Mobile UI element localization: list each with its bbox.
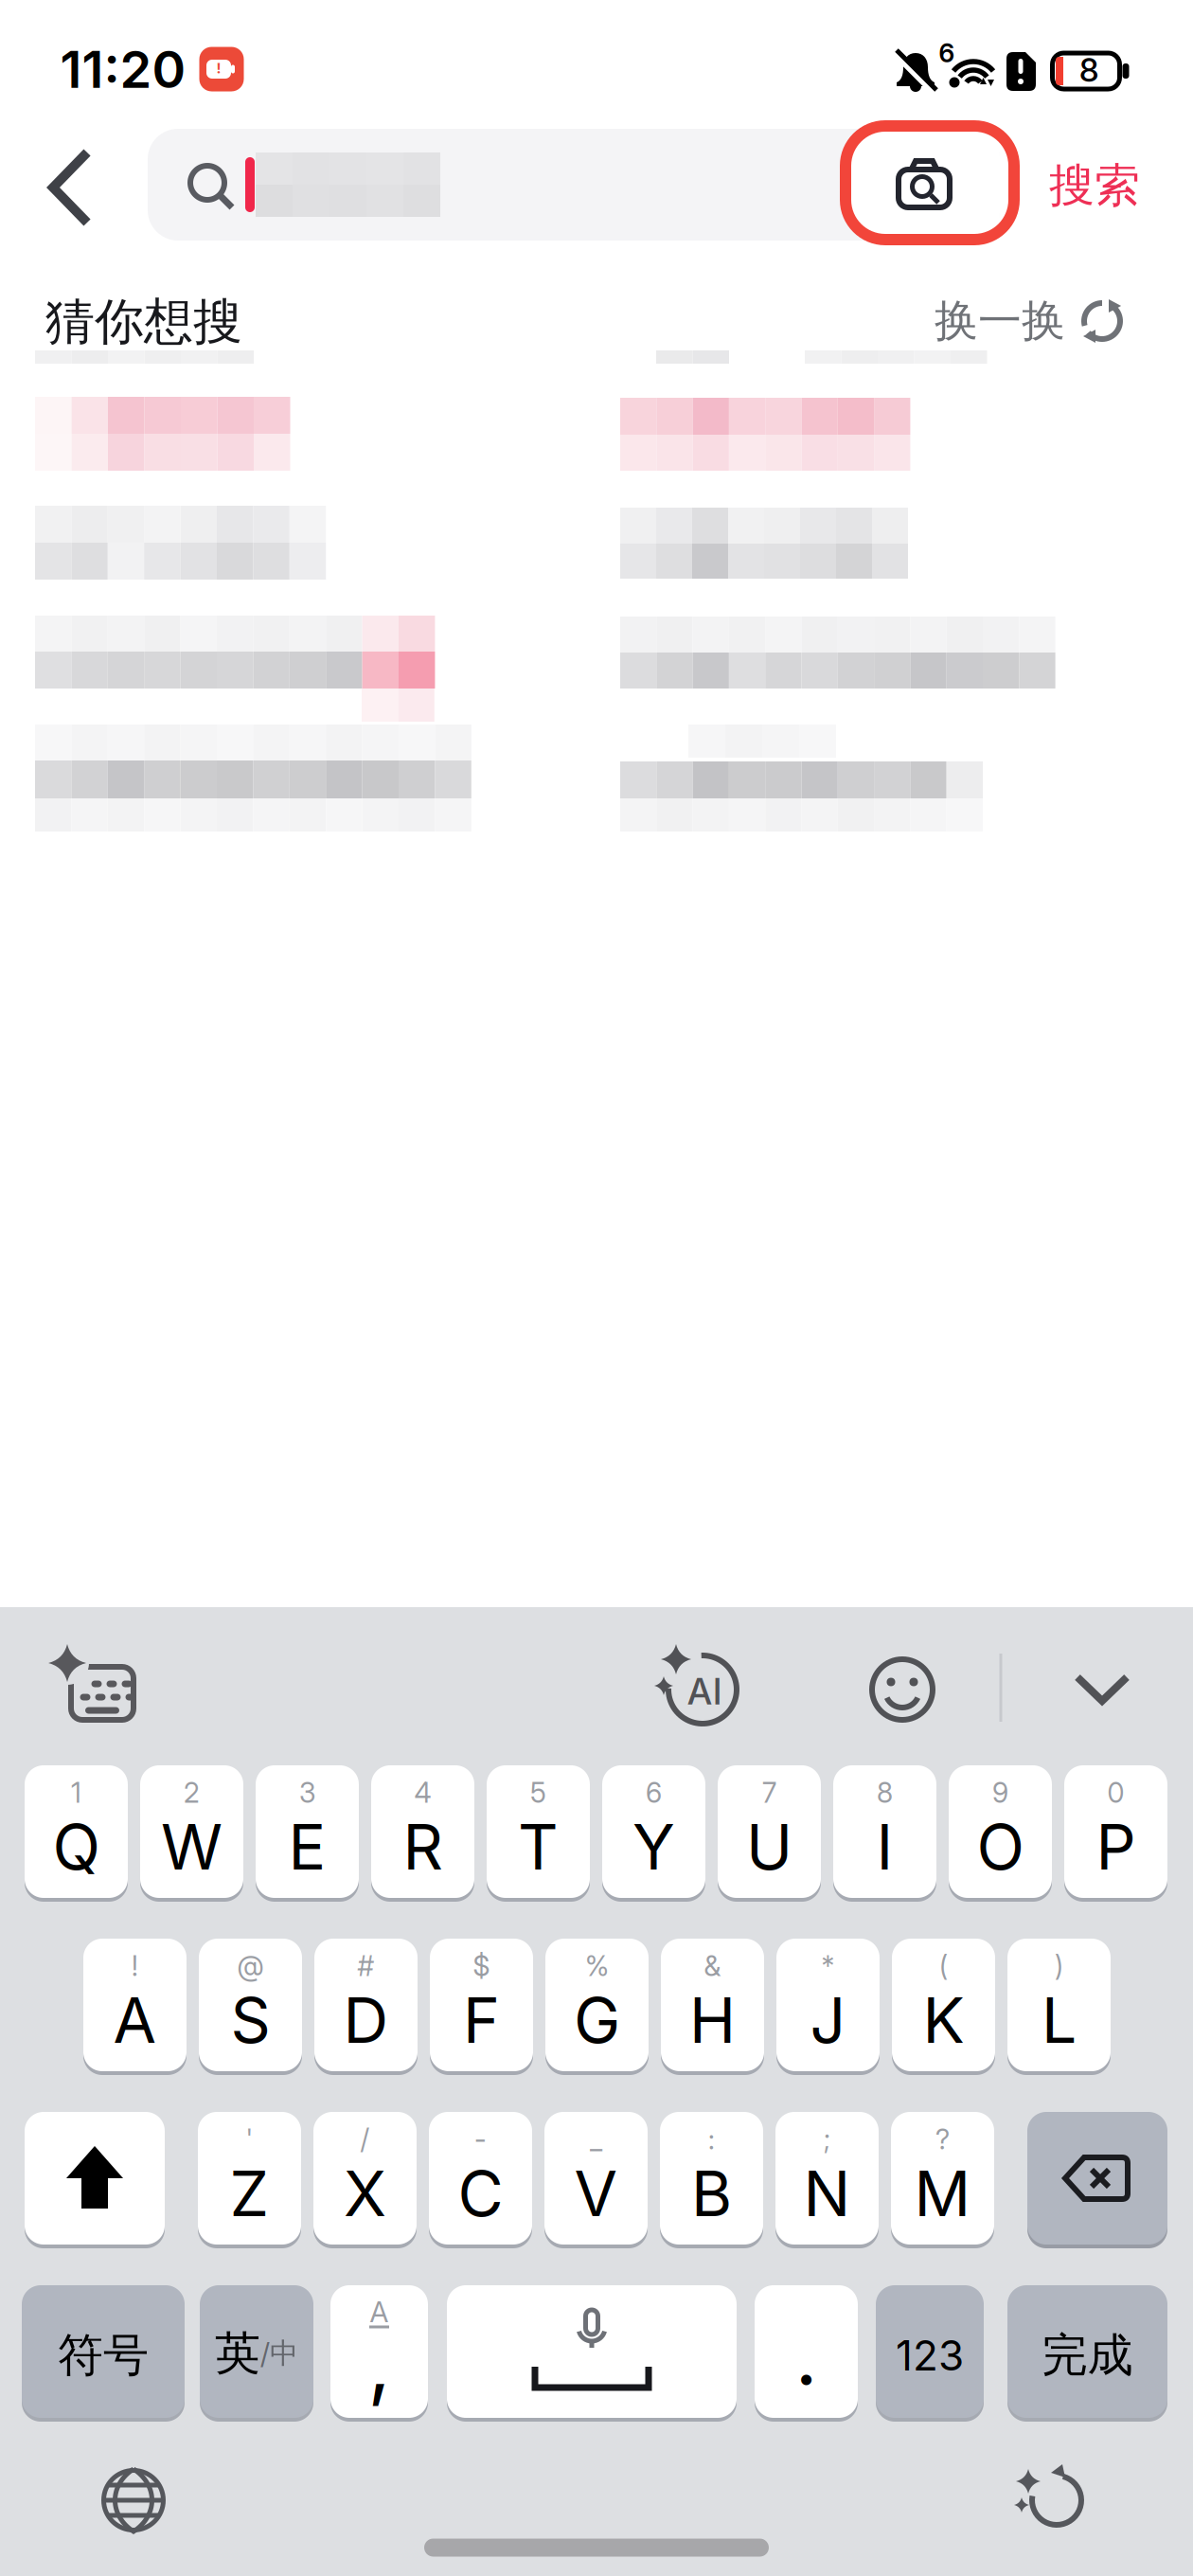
staticText: 7 xyxy=(762,1777,776,1809)
staticText: 6 xyxy=(646,1777,662,1809)
button[interactable]: I xyxy=(833,1765,936,1898)
staticText: S xyxy=(231,1983,270,2057)
button[interactable]: R xyxy=(371,1765,474,1898)
staticText: A xyxy=(370,2295,389,2329)
button[interactable]: Space xyxy=(447,2285,737,2418)
staticText: V xyxy=(574,2157,618,2230)
staticText: $ xyxy=(473,1950,490,1982)
button[interactable]: N xyxy=(775,2112,879,2245)
button[interactable]: K xyxy=(892,1939,995,2071)
staticText: C xyxy=(458,2157,503,2230)
button[interactable]: W xyxy=(140,1765,243,1898)
staticText: D xyxy=(343,1983,389,2057)
button[interactable]: Switch keyboard xyxy=(47,1648,142,1727)
staticText: H xyxy=(689,1983,736,2057)
button[interactable]: Shift xyxy=(25,2112,165,2245)
staticText: ) xyxy=(1055,1950,1063,1982)
staticText: 6 xyxy=(939,38,955,68)
staticText: 3 xyxy=(299,1777,315,1809)
staticText: & xyxy=(704,1950,721,1982)
button[interactable]: Emoji xyxy=(868,1655,936,1724)
staticText: 完成 xyxy=(1042,2327,1133,2383)
button[interactable]: T xyxy=(487,1765,590,1898)
button[interactable]: L xyxy=(1007,1939,1111,2071)
staticText: Q xyxy=(53,1810,100,1884)
staticText: 符号 xyxy=(58,2327,149,2383)
button[interactable]: 换一换 xyxy=(935,294,1124,348)
staticText: R xyxy=(403,1810,443,1884)
staticText: / xyxy=(360,2123,370,2156)
button[interactable]: M xyxy=(891,2112,994,2245)
staticText: 1 xyxy=(71,1777,81,1809)
staticText: U xyxy=(746,1810,792,1884)
button[interactable]: X xyxy=(313,2112,417,2245)
staticText: T xyxy=(518,1810,559,1884)
button[interactable]: 完成 xyxy=(1007,2285,1167,2418)
staticText: @ xyxy=(237,1950,264,1982)
button[interactable]: F xyxy=(430,1939,533,2071)
staticText: ? xyxy=(935,2123,950,2156)
button[interactable]: Back xyxy=(32,140,108,235)
button[interactable]: Y xyxy=(602,1765,705,1898)
button[interactable]: Restore xyxy=(1015,2460,1091,2536)
staticText: X xyxy=(344,2157,386,2230)
staticText: 换一换 xyxy=(935,294,1065,348)
button[interactable]: 符号 xyxy=(22,2285,185,2418)
staticText: M xyxy=(914,2157,971,2230)
staticText: J xyxy=(810,1983,846,2057)
button[interactable]: J xyxy=(776,1939,880,2071)
staticText: ; xyxy=(824,2123,830,2156)
button[interactable]: Z xyxy=(198,2112,301,2245)
button[interactable]: period xyxy=(755,2285,858,2418)
button[interactable]: U xyxy=(718,1765,821,1898)
staticText: I xyxy=(876,1810,893,1884)
staticText: G xyxy=(574,1983,620,2057)
staticText: O xyxy=(977,1810,1024,1884)
staticText: 0 xyxy=(1107,1777,1124,1809)
staticText: , xyxy=(368,2316,391,2410)
button[interactable]: Dismiss keyboard xyxy=(1074,1673,1131,1706)
button[interactable]: Image search xyxy=(848,129,1000,241)
button[interactable]: D xyxy=(314,1939,418,2071)
staticText: B xyxy=(691,2157,732,2230)
button[interactable]: C xyxy=(429,2112,532,2245)
staticText: L xyxy=(1042,1983,1077,2057)
button[interactable]: Delete xyxy=(1027,2112,1167,2245)
button[interactable]: V xyxy=(544,2112,648,2245)
staticText: K xyxy=(923,1983,964,2057)
button[interactable]: A xyxy=(83,1939,187,2071)
staticText: _ xyxy=(590,2123,602,2156)
button[interactable]: P xyxy=(1064,1765,1167,1898)
staticText: Y xyxy=(632,1810,675,1884)
staticText: 5 xyxy=(530,1777,546,1809)
staticText: * xyxy=(821,1950,835,1982)
staticText: - xyxy=(474,2123,487,2156)
staticText: F xyxy=(463,1983,500,2057)
staticText: N xyxy=(803,2157,851,2230)
button[interactable]: H xyxy=(661,1939,764,2071)
staticText: 11:20 xyxy=(60,39,186,99)
button[interactable]: O xyxy=(949,1765,1052,1898)
button[interactable]: Q xyxy=(25,1765,128,1898)
button[interactable]: 搜索 xyxy=(1049,158,1140,214)
button[interactable]: 123 xyxy=(876,2285,984,2418)
staticText: /中 xyxy=(260,2336,298,2371)
button[interactable]: S xyxy=(199,1939,302,2071)
staticText: ! xyxy=(216,60,221,77)
staticText: W xyxy=(161,1810,223,1884)
button[interactable]: G xyxy=(545,1939,649,2071)
staticText: 9 xyxy=(992,1777,1008,1809)
staticText: Z xyxy=(230,2157,269,2230)
button[interactable]: Switch input method xyxy=(99,2466,168,2534)
button[interactable]: AI assistant xyxy=(655,1644,746,1731)
staticText: : xyxy=(708,2123,715,2156)
staticText: P xyxy=(1096,1810,1136,1884)
button[interactable]: comma xyxy=(330,2285,428,2418)
staticText: ' xyxy=(246,2123,253,2156)
staticText: % xyxy=(585,1950,609,1982)
button[interactable]: E xyxy=(256,1765,359,1898)
button[interactable]: B xyxy=(660,2112,763,2245)
button[interactable]: 英/中 xyxy=(200,2285,313,2418)
staticText: 8 xyxy=(877,1777,893,1809)
staticText: . xyxy=(795,2308,818,2402)
